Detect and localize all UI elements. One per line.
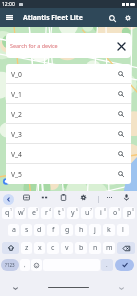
staticText: e [32,208,36,218]
staticText: a [12,225,16,235]
button[interactable]: Enter [115,259,134,271]
button[interactable]: n [89,242,101,254]
button[interactable]: l [117,224,129,236]
button[interactable]: t [54,207,65,219]
button[interactable]: g [61,224,73,236]
button[interactable]: o [109,207,121,219]
button[interactable]: v [61,242,73,254]
button[interactable]: b [75,242,87,254]
button[interactable]: h [75,224,87,236]
staticText: V_2 [11,110,22,119]
button[interactable]: Switch keyboard [117,284,126,293]
staticText: 12:00 [2,1,15,8]
button[interactable]: V_2 [6,104,131,124]
staticText: u [85,208,90,218]
button[interactable]: V_4 [6,144,131,164]
button[interactable]: c [47,242,59,254]
button[interactable]: V_0 [6,64,131,84]
staticText: 9 [118,207,121,212]
staticText: p [127,208,132,218]
button[interactable]: y [67,207,79,219]
staticText: b [79,243,84,253]
button[interactable]: clipboard [57,191,69,203]
staticText: w [18,208,24,218]
button[interactable]: q [2,207,13,219]
staticText: o [113,208,118,218]
staticText: V_5 [11,170,22,179]
button[interactable]: Clear search [111,36,131,56]
staticText: q [5,208,10,218]
button[interactable]: p [123,207,135,219]
staticText: r [45,208,48,218]
button[interactable]: dots [103,191,115,203]
staticText: Atlantis Fleet Lite [23,13,83,22]
button[interactable]: V_3 [6,124,131,144]
staticText: 7 [90,207,93,212]
staticText: c [51,243,55,253]
button[interactable]: j [89,224,101,236]
button[interactable]: d [34,224,45,236]
staticText: m [106,243,113,253]
button[interactable]: . [101,259,113,271]
staticText: i [100,208,102,218]
button[interactable]: u [81,207,93,219]
button[interactable]: i [95,207,107,219]
staticText: 0 [132,207,135,212]
button[interactable]: a [8,224,19,236]
button[interactable]: Back [3,194,14,205]
button[interactable]: Search [104,10,120,26]
button[interactable]: f [47,224,59,236]
button[interactable]: mic [120,191,132,203]
button[interactable]: k [103,224,115,236]
button[interactable]: z [21,242,32,254]
staticText: ?123 [5,262,15,268]
staticText: h [79,225,84,235]
staticText: j [94,225,96,235]
staticText: 1 [10,207,13,212]
button[interactable]: Settings [120,10,136,26]
button[interactable]: V_5 [6,164,131,184]
staticText: l [122,225,124,235]
staticText: , [24,261,26,269]
staticText: V_0 [11,70,22,79]
button[interactable]: Backspace [117,242,135,254]
staticText: 2 [23,207,26,212]
button[interactable]: s [21,224,32,236]
staticText: 3 [36,207,39,212]
button[interactable]: Hide keyboard [11,284,20,293]
staticText: d [37,225,42,235]
staticText: f [52,225,55,235]
staticText: z [25,243,29,253]
staticText: y [71,208,75,218]
button[interactable]: x [34,242,45,254]
staticText: 5 [62,207,65,212]
staticText: x [38,243,42,253]
button[interactable]: Shift [2,242,19,254]
button[interactable]: m [103,242,115,254]
button[interactable]: gear [77,191,89,203]
button[interactable]: r [41,207,52,219]
button[interactable]: Search for a device [6,33,131,58]
staticText: v [65,243,69,253]
staticText: 4 [49,207,52,212]
button[interactable]: , [20,259,30,271]
staticText: k [107,225,111,235]
staticText: Search for a device [10,42,58,49]
staticText: t [58,208,61,218]
staticText: . [106,261,108,269]
staticText: V_1 [11,90,22,99]
button[interactable]: V_1 [6,84,131,104]
button[interactable]: sticker [38,191,50,203]
staticText: V_3 [11,130,22,139]
button[interactable]: ?123 [1,259,19,271]
button[interactable]: w [15,207,26,219]
staticText: g [65,225,70,235]
staticText: 6 [76,207,79,212]
staticText: n [93,243,98,253]
button[interactable]: e [28,207,39,219]
staticText: s [25,225,29,235]
button[interactable]: Open navigation menu [0,8,19,27]
button[interactable]: Emoji [31,259,42,271]
button[interactable]: gif [20,191,32,203]
